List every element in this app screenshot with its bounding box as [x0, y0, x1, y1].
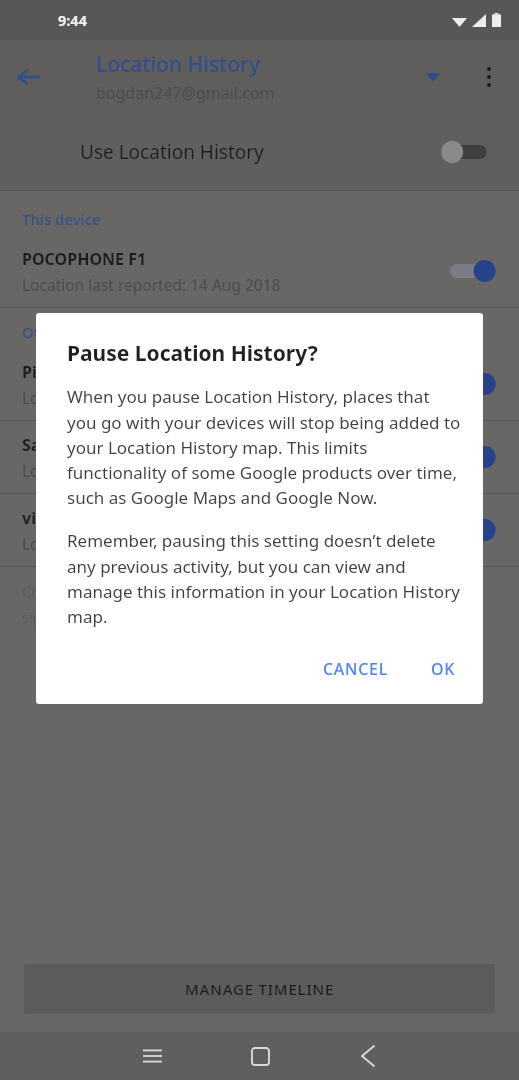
button[interactable]: Use Location History — [0, 114, 519, 190]
staticText: POCOPHONE F1 — [22, 248, 147, 270]
staticText: Location last reported: 3 Aug 2018 — [22, 533, 272, 554]
button[interactable]: More options — [467, 55, 511, 99]
staticText: Pixel 2 — [22, 361, 74, 383]
button[interactable]: Back — [0, 49, 56, 105]
staticText: MANAGE TIMELINE — [185, 979, 335, 999]
button[interactable]: Samsung SM-G950F — [0, 421, 519, 493]
staticText: Pause Location History? — [67, 339, 318, 368]
staticText: Location last reported: 12 Aug 2018 — [22, 387, 281, 408]
button[interactable]: Pixel 2 — [0, 348, 519, 420]
staticText: Other devices — [22, 322, 121, 342]
staticText: vivo 1723 — [22, 507, 96, 529]
button[interactable]: OK — [418, 642, 469, 696]
button[interactable]: Recent apps — [128, 1032, 176, 1080]
staticText: bogdan247@gmail.com — [96, 82, 275, 104]
button[interactable]: vivo 1723 — [0, 494, 519, 566]
staticText: Use Location History — [80, 139, 443, 165]
staticText: This device — [22, 209, 101, 229]
button[interactable]: Switch account — [411, 55, 455, 99]
button[interactable]: Toggle on — [447, 514, 499, 546]
staticText: OK — [431, 658, 456, 680]
staticText: Changing this setting affects all of the… — [22, 581, 334, 601]
button[interactable]: MANAGE TIMELINE — [24, 964, 495, 1014]
button[interactable]: CANCEL — [310, 642, 401, 696]
staticText: 9:44 — [58, 10, 87, 30]
staticText: When you pause Location History, places … — [67, 385, 461, 509]
button[interactable]: POCOPHONE F1 — [0, 235, 519, 307]
staticText: Location History — [96, 50, 260, 79]
staticText: Location last reported: 14 Aug 2018 — [22, 274, 281, 295]
staticText: CANCEL — [323, 658, 388, 680]
button[interactable]: Toggle on — [447, 255, 499, 287]
staticText: Location last reported: 9 Aug 2018 — [22, 460, 272, 481]
staticText: Remember, pausing this setting doesn’t d… — [67, 529, 461, 628]
button[interactable]: Toggle off — [443, 136, 495, 168]
staticText: signed in with this account. — [22, 607, 208, 627]
staticText: Samsung SM-G950F — [22, 434, 176, 456]
button[interactable]: Toggle on — [447, 441, 499, 473]
button[interactable]: Toggle on — [447, 368, 499, 400]
button[interactable]: Home — [236, 1032, 284, 1080]
button[interactable]: Back — [344, 1032, 392, 1080]
